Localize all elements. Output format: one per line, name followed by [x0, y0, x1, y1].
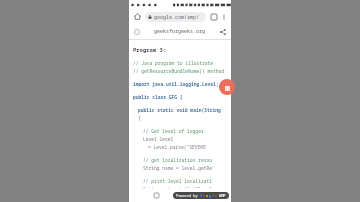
staticText: AMP: [219, 193, 226, 198]
staticText: public static void main(String: [138, 107, 221, 113]
button[interactable]: Powered by: [173, 192, 229, 199]
staticText: // getResourceBundleName() method: [133, 68, 224, 74]
staticText: l: [212, 193, 215, 198]
staticText: // Get level of logger: [143, 128, 204, 134]
staticText: // get localization resou: [143, 157, 212, 163]
button[interactable]: Close: [132, 27, 142, 37]
button[interactable]: More options: [219, 12, 228, 21]
staticText: geeksforgeeks.org: [154, 28, 206, 35]
staticText: g: [209, 193, 212, 198]
staticText: Powered by: [176, 193, 200, 198]
staticText: System.out.println("local: [143, 186, 212, 188]
button[interactable]: Home: [132, 11, 143, 22]
staticText: Level level: [143, 136, 174, 142]
staticText: e: [215, 193, 218, 198]
staticText: String name = level.getRe: [143, 165, 212, 171]
button[interactable]: Open menu: [219, 79, 235, 95]
staticText: public class GFG {: [133, 94, 183, 100]
staticText: Program 3:: [133, 46, 167, 53]
staticText: {: [138, 115, 141, 121]
button[interactable]: google.com/amp/s/www: [145, 12, 206, 22]
staticText: // Java program to illustrate: [133, 60, 213, 66]
staticText: o: [203, 193, 206, 198]
staticText: // print level localizati: [143, 178, 212, 184]
staticText: google.com/amp/s/www: [154, 14, 203, 21]
staticText: = Level.parse("SEVERE: [148, 144, 206, 150]
staticText: o: [206, 193, 209, 198]
staticText: m: [225, 82, 230, 93]
button[interactable]: Share: [218, 27, 228, 37]
button[interactable]: Tabs: [208, 11, 219, 22]
button[interactable]: Home: [151, 190, 161, 200]
staticText: G: [200, 193, 203, 198]
staticText: import java.util.logging.Level;: [133, 81, 219, 87]
